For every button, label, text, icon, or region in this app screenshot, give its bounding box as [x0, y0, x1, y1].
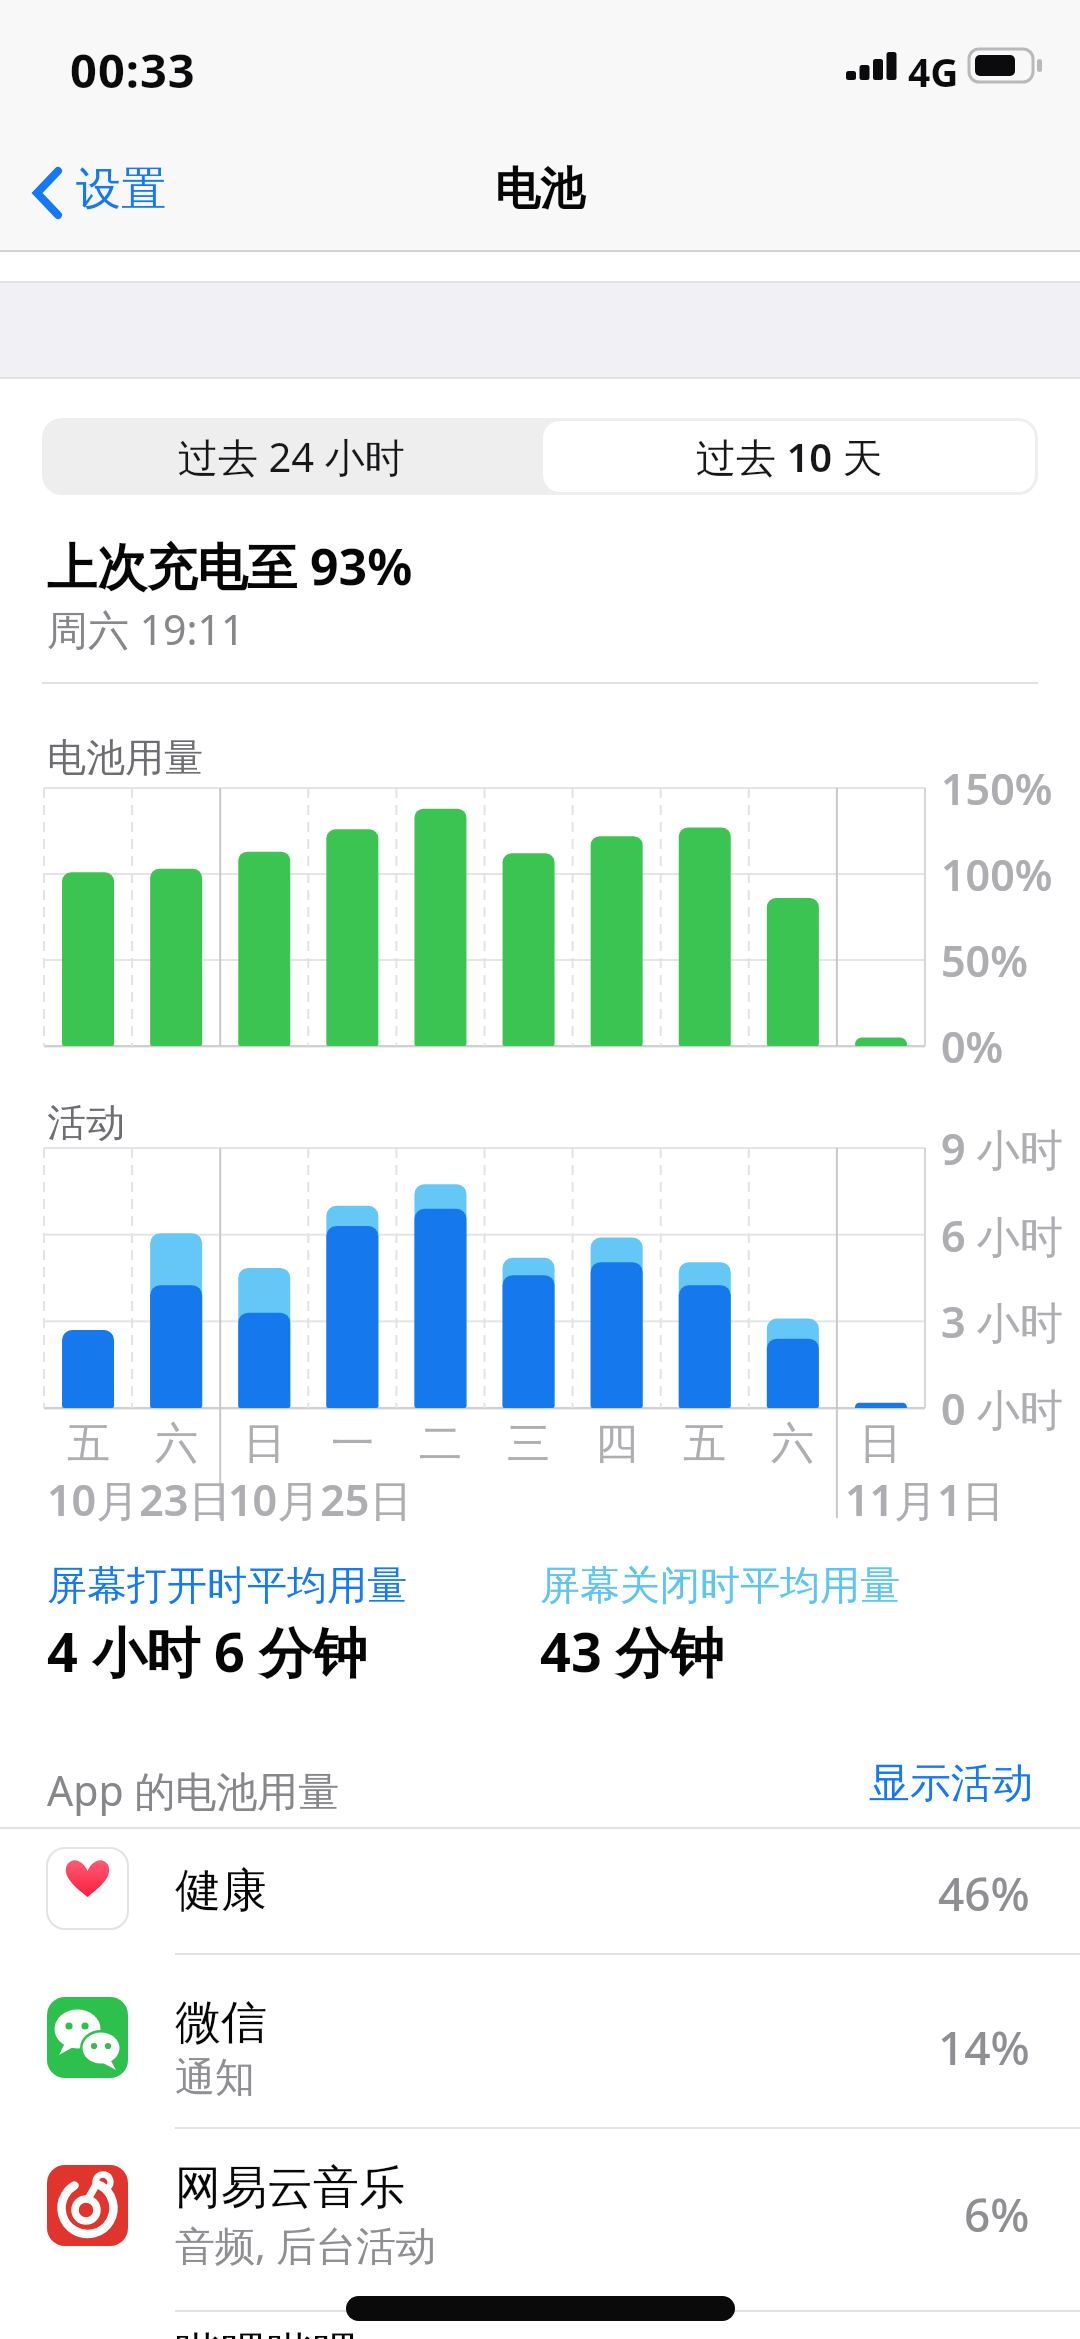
staticText: 四 — [595, 1417, 638, 1471]
staticText: 通知 — [175, 2052, 255, 2102]
staticText: 健康 — [175, 1862, 267, 1920]
staticText: 过去 10 天 — [696, 429, 883, 484]
staticText: 电池用量 — [47, 733, 203, 782]
button[interactable]: 显示活动 — [733, 1756, 1033, 1812]
button[interactable]: 网易云音乐 — [0, 2128, 1080, 2311]
staticText: 活动 — [47, 1098, 125, 1147]
staticText: 46% — [938, 1862, 1030, 1925]
staticText: App 的电池用量 — [47, 1762, 340, 1818]
staticText: 11月1日 — [845, 1470, 1005, 1529]
staticText: 一 — [331, 1417, 374, 1471]
staticText: 6 小时 — [941, 1206, 1063, 1265]
staticText: 日 — [243, 1417, 286, 1471]
staticText: 3 小时 — [941, 1292, 1063, 1351]
staticText: 9 小时 — [941, 1119, 1063, 1178]
button[interactable]: 过去 10 天 — [543, 421, 1035, 492]
staticText: 六 — [771, 1417, 814, 1471]
button[interactable]: 设置 — [14, 152, 214, 232]
staticText: 屏幕打开时平均用量 — [47, 1560, 407, 1610]
staticText: 六 — [155, 1417, 198, 1471]
staticText: 电池 — [495, 161, 585, 218]
staticText: 14% — [938, 2016, 1030, 2079]
staticText: 网易云音乐 — [175, 2159, 405, 2217]
staticText: 周六 19:11 — [47, 601, 245, 657]
staticText: 五 — [683, 1417, 726, 1471]
staticText: 4 小时 6 分钟 — [47, 1614, 367, 1688]
staticText: 二 — [419, 1417, 462, 1471]
staticText: 音频, 后台活动 — [175, 2217, 437, 2272]
staticText: 三 — [507, 1417, 550, 1471]
staticText: 显示活动 — [869, 1758, 1033, 1810]
button[interactable]: 微信 — [0, 1954, 1080, 2128]
staticText: 150% — [941, 759, 1053, 818]
staticText: 43 分钟 — [540, 1614, 724, 1688]
staticText: 00:33 — [70, 38, 196, 102]
staticText: 微信 — [175, 1994, 267, 2052]
staticText: 0 小时 — [941, 1379, 1063, 1438]
staticText: 0% — [941, 1017, 1004, 1076]
staticText: 日 — [859, 1417, 902, 1471]
staticText: 10月25日 — [228, 1470, 413, 1529]
staticText: 屏幕关闭时平均用量 — [540, 1560, 900, 1610]
staticText: 设置 — [76, 161, 166, 218]
staticText: 4G — [908, 45, 959, 98]
staticText: 五 — [67, 1417, 110, 1471]
staticText: 6% — [964, 2183, 1030, 2246]
button[interactable]: 哔哩哔哩 — [0, 2311, 1080, 2339]
staticText: 过去 24 小时 — [178, 429, 405, 484]
staticText: 50% — [941, 931, 1028, 990]
button[interactable]: 健康 — [0, 1829, 1080, 1954]
staticText: 上次充电至 93% — [47, 532, 413, 600]
staticText: 哔哩哔哩 — [175, 2326, 359, 2339]
staticText: 100% — [941, 845, 1053, 904]
button[interactable]: 过去 24 小时 — [42, 418, 540, 495]
staticText: 10月23日 — [47, 1470, 232, 1529]
